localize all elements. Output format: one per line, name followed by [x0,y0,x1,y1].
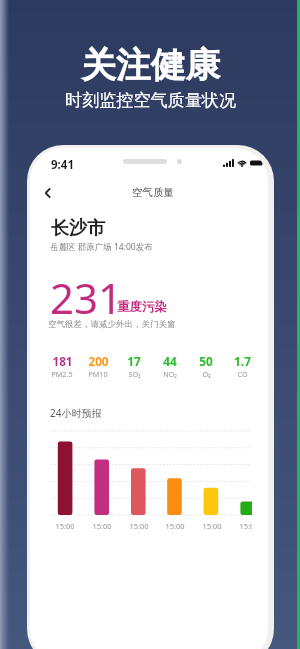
staticText: 空气质量 [132,186,174,199]
staticText: 长沙市 [51,217,105,240]
staticText: 44 [163,353,177,369]
staticText: NO₂ [163,369,177,379]
staticText: 关注健康 [81,44,220,88]
staticText: PM2.5 [51,369,73,379]
button[interactable]: Back [36,181,60,205]
staticText: 重度污染 [117,299,167,315]
staticText: 15:00 [55,521,75,531]
staticText: 15:00 [202,521,222,531]
staticText: 空气很差，请减少外出，关门关窗 [48,319,176,330]
staticText: 15:00 [129,521,149,531]
staticText: 17 [127,353,141,369]
staticText: 24小时预报 [50,406,102,420]
staticText: 9:41 [51,157,74,173]
staticText: PM10 [88,369,108,379]
staticText: 时刻监控空气质量状况 [65,90,236,112]
staticText: 15:00 [165,521,185,531]
staticText: 15:00 [239,521,252,531]
staticText: 15:00 [92,521,112,531]
staticText: CO [237,369,248,379]
staticText: O₃ [202,369,211,379]
staticText: 200 [88,353,109,369]
staticText: 岳麓区 郡原广场 14:00发布 [50,241,153,253]
staticText: SO₂ [128,369,141,379]
staticText: 181 [52,353,73,369]
staticText: 50 [199,353,213,369]
staticText: 231 [50,269,123,326]
staticText: 1.7 [234,353,251,369]
